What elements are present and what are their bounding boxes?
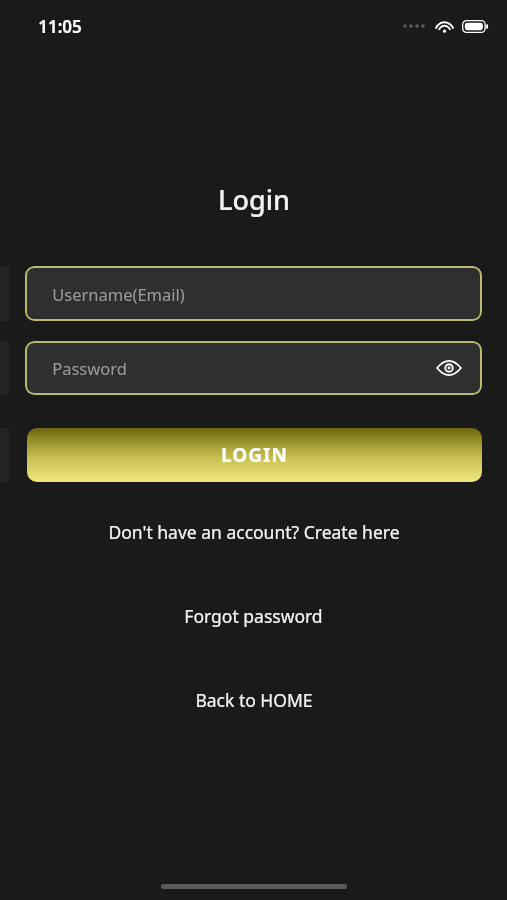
staticText: Back to HOME — [195, 688, 313, 712]
button[interactable]: Forgot password — [0, 601, 507, 631]
staticText: 11:05 — [38, 15, 82, 38]
staticText: Login — [218, 181, 290, 218]
button[interactable]: LOGIN — [27, 428, 482, 482]
button[interactable]: Password — [25, 341, 482, 395]
staticText: Forgot password — [184, 604, 323, 628]
staticText: Don't have an account? Create here — [108, 520, 400, 544]
button[interactable]: Back to HOME — [0, 685, 507, 715]
button[interactable]: Username(Email) — [25, 266, 482, 321]
button[interactable]: Show password — [429, 348, 469, 388]
staticText: LOGIN — [221, 442, 288, 468]
button[interactable]: Don't have an account? Create here — [0, 517, 507, 547]
staticText: Password — [52, 357, 127, 379]
staticText: Username(Email) — [52, 283, 185, 305]
